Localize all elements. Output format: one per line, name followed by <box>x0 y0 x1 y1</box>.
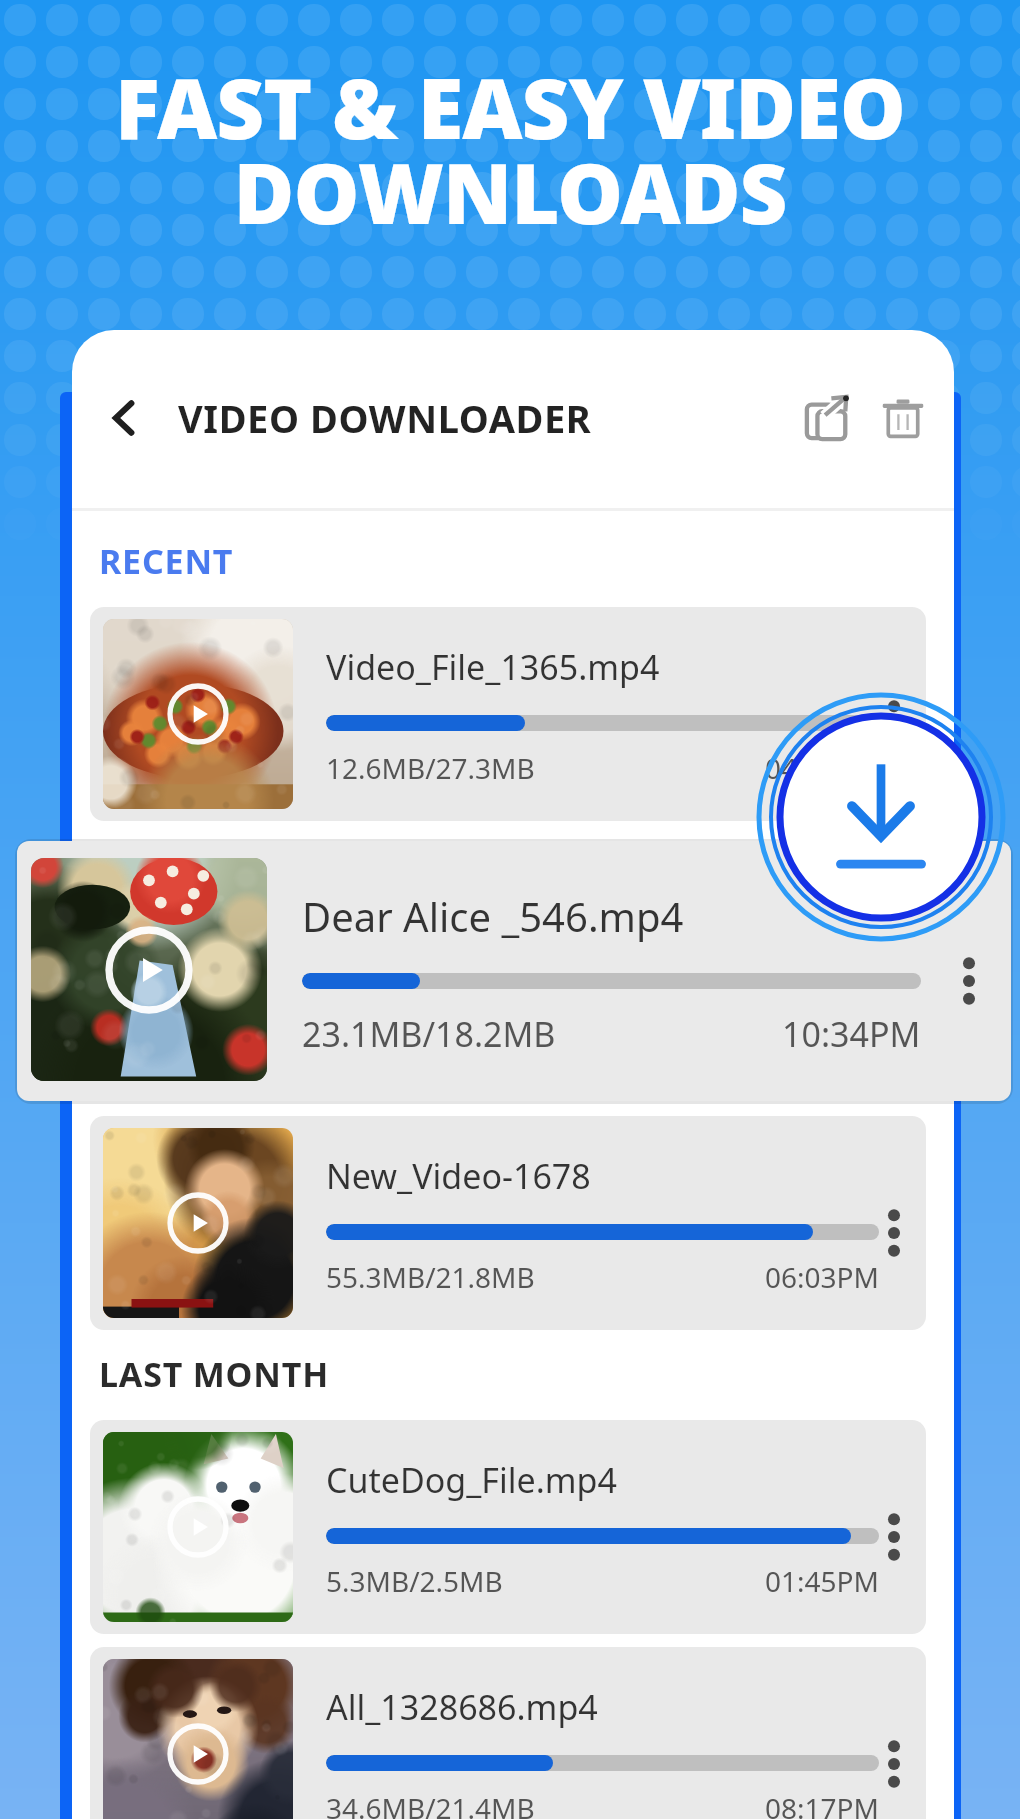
button[interactable]: Video_File_1365.mp4 <box>90 607 926 821</box>
button[interactable]: Delete <box>874 389 932 447</box>
button[interactable]: More options <box>874 1508 914 1566</box>
staticText: RECENT <box>99 538 234 584</box>
button[interactable]: All_1328686.mp4 <box>90 1647 926 1819</box>
staticText: 01:45PM <box>765 1562 879 1600</box>
staticText: VIDEO DOWNLOADER <box>178 392 592 444</box>
staticText: LAST MONTH <box>99 1351 329 1397</box>
staticText: New_Video-1678 <box>326 1153 591 1199</box>
staticText: CuteDog_File.mp4 <box>326 1457 617 1503</box>
staticText: Video_File_1365.mp4 <box>326 644 660 690</box>
staticText: FAST & EASY VIDEO DOWNLOADS <box>115 50 905 249</box>
staticText: 08:17PM <box>765 1789 879 1819</box>
button[interactable]: Download <box>757 693 1005 941</box>
staticText: 23.1MB/18.2MB <box>302 1011 556 1057</box>
staticText: Dear Alice _546.mp4 <box>302 889 684 943</box>
staticText: 55.3MB/21.8MB <box>326 1258 535 1296</box>
staticText: 5.3MB/2.5MB <box>326 1562 503 1600</box>
staticText: 10:34PM <box>782 1011 921 1057</box>
button[interactable]: More options <box>945 948 993 1014</box>
staticText: 12.6MB/27.3MB <box>326 749 535 787</box>
button[interactable]: CuteDog_File.mp4 <box>90 1420 926 1634</box>
button[interactable]: More options <box>874 1735 914 1793</box>
staticText: 06:03PM <box>765 1258 879 1296</box>
button[interactable]: New_Video-1678 <box>90 1116 926 1330</box>
staticText: All_1328686.mp4 <box>326 1684 598 1730</box>
staticText: 04:33PM <box>765 749 879 787</box>
staticText: 34.6MB/21.4MB <box>326 1789 535 1819</box>
button[interactable]: More options <box>874 1204 914 1262</box>
button[interactable]: Dear Alice _546.mp4 <box>17 841 1011 1101</box>
button[interactable]: Share <box>796 386 860 450</box>
button[interactable]: More options <box>874 695 914 753</box>
button[interactable]: Back <box>94 387 156 449</box>
